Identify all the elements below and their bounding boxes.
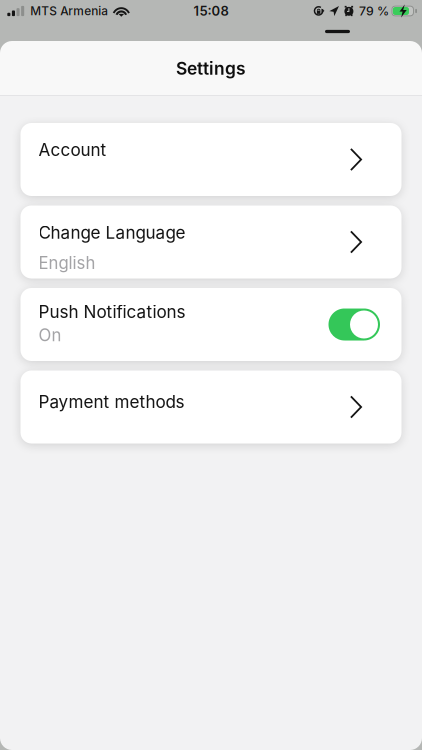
staticText: On (38, 325, 61, 345)
staticText: 79 % (359, 4, 389, 18)
staticText: English (38, 253, 95, 273)
staticText: Push Notifications (38, 301, 185, 322)
button[interactable]: Push Notifications (20, 288, 401, 361)
staticText: Change Language (38, 222, 185, 243)
staticText: MTS Armenia (30, 4, 108, 18)
button[interactable]: Account (20, 123, 401, 196)
staticText: 15:08 (193, 3, 228, 19)
staticText: Payment methods (38, 392, 184, 412)
button[interactable]: Change Language (20, 205, 401, 278)
staticText: Settings (176, 58, 246, 79)
button[interactable]: Payment methods (20, 370, 401, 443)
staticText: Account (38, 139, 106, 160)
